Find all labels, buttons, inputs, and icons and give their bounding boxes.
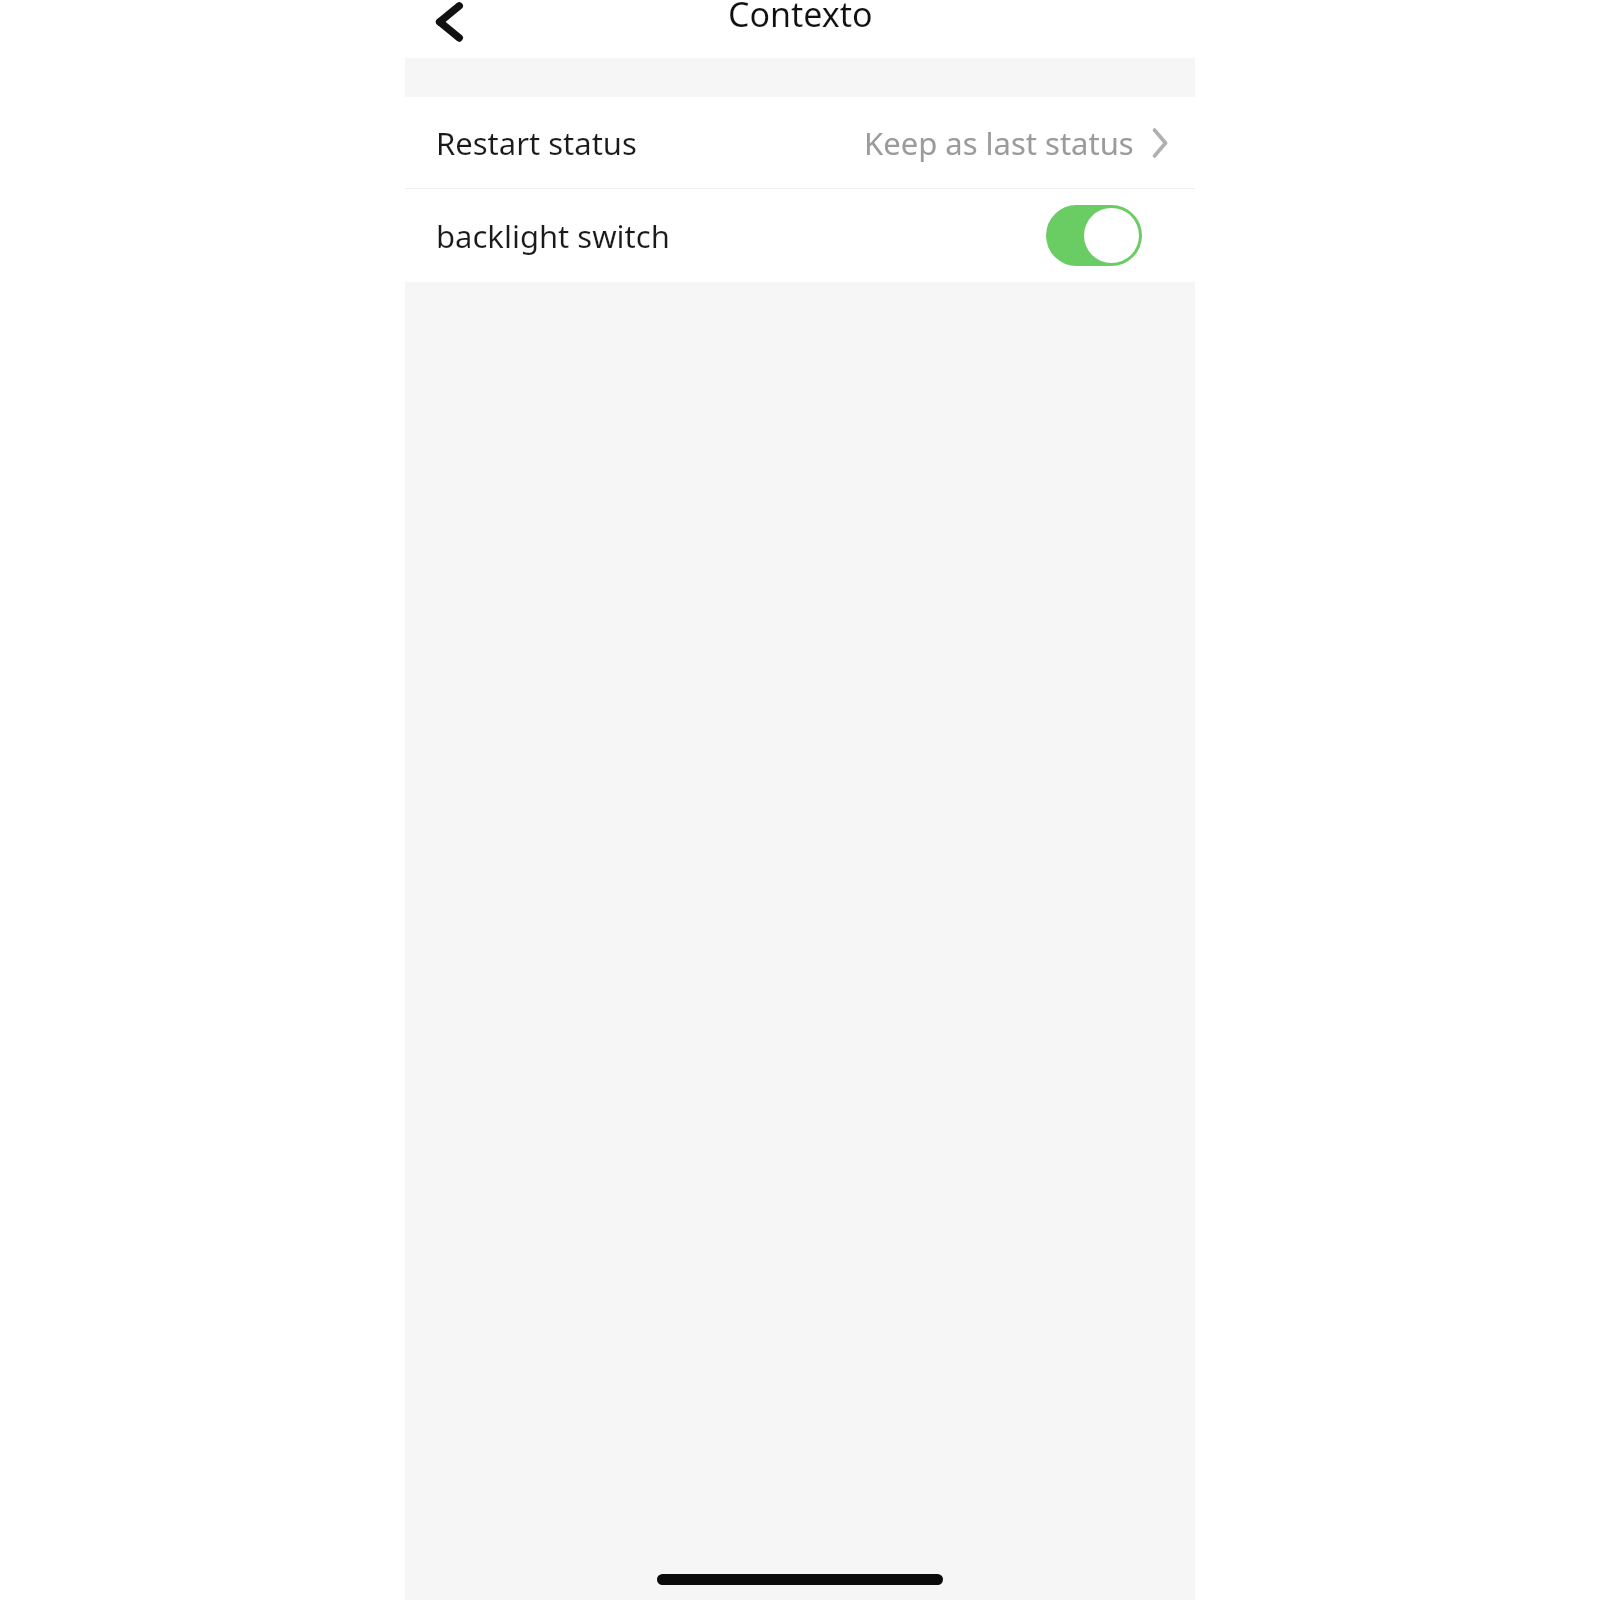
button[interactable]: backlight switch [405,189,1195,282]
staticText: Keep as last status [864,122,1134,164]
staticText: Contexto [728,0,873,37]
staticText: Restart status [436,122,637,164]
button[interactable]: Back [411,0,475,44]
staticText: backlight switch [436,215,670,257]
button[interactable]: backlight switch toggle [1046,205,1142,266]
button[interactable]: Restart status [405,97,1195,188]
